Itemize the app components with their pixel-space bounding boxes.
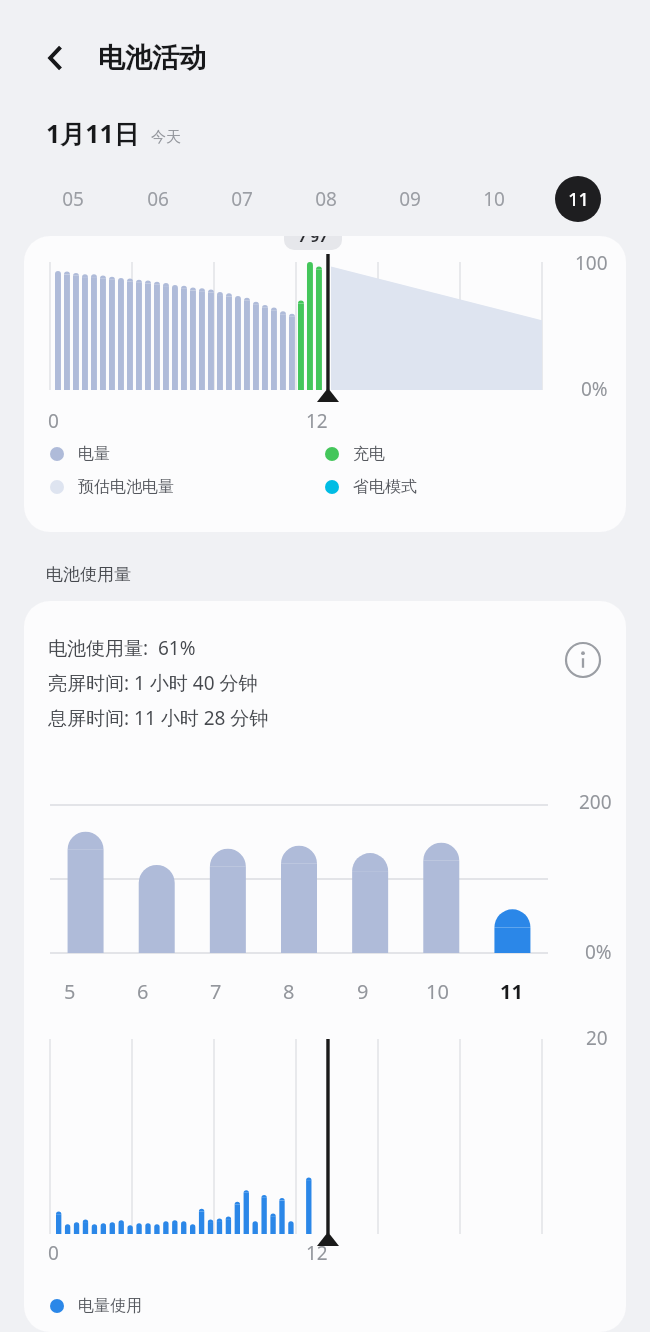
staticText: 12 (306, 408, 328, 434)
staticText: 亮屏时间: 1 小时 40 分钟 (48, 670, 258, 696)
staticText: 10 (426, 978, 449, 1005)
staticText: 9 (357, 978, 369, 1005)
button[interactable]: 06 (115, 173, 200, 225)
button[interactable]: Information (560, 637, 606, 683)
staticText: 10 (483, 186, 505, 212)
button[interactable]: 08 (284, 173, 368, 225)
button[interactable]: 11 (536, 173, 620, 225)
staticText: 08 (315, 186, 337, 212)
staticText: 11 (500, 978, 523, 1005)
staticText: 8 (283, 978, 295, 1005)
staticText: 6 (137, 978, 149, 1005)
button[interactable]: 电池使用量: 61% (24, 601, 626, 1332)
staticText: 20 (586, 1025, 608, 1051)
button[interactable]: 7 97 (24, 236, 626, 532)
staticText: 省电模式 (353, 477, 417, 497)
staticText: 07 (231, 186, 253, 212)
staticText: 05 (62, 186, 84, 212)
staticText: 12 (306, 1240, 328, 1266)
button[interactable]: Back (32, 34, 80, 82)
staticText: 7 97 (298, 236, 328, 246)
staticText: 电量 (78, 444, 110, 464)
staticText: 电池使用量: 61% (48, 635, 196, 661)
button[interactable]: 07 (200, 173, 284, 225)
staticText: 电量使用 (78, 1296, 142, 1316)
staticText: 06 (147, 186, 169, 212)
staticText: 0 (48, 1240, 59, 1266)
staticText: 0 (48, 408, 59, 434)
staticText: 电池活动 (98, 41, 206, 75)
button[interactable]: 09 (368, 173, 452, 225)
staticText: 预估电池电量 (78, 477, 174, 497)
staticText: 0% (585, 939, 612, 965)
button[interactable]: 10 (452, 173, 536, 225)
staticText: 200 (579, 789, 612, 815)
staticText: 息屏时间: 11 小时 28 分钟 (48, 705, 269, 731)
staticText: 5 (64, 978, 76, 1005)
staticText: 电池使用量 (46, 564, 131, 585)
staticText: 7 (210, 978, 222, 1005)
staticText: 11 (568, 187, 589, 212)
staticText: 09 (399, 186, 421, 212)
staticText: 1月11日 (46, 116, 139, 150)
staticText: 充电 (353, 444, 385, 464)
staticText: 100 (575, 250, 608, 276)
staticText: 0% (581, 376, 608, 402)
button[interactable]: 05 (30, 173, 115, 225)
staticText: 今天 (151, 128, 181, 147)
